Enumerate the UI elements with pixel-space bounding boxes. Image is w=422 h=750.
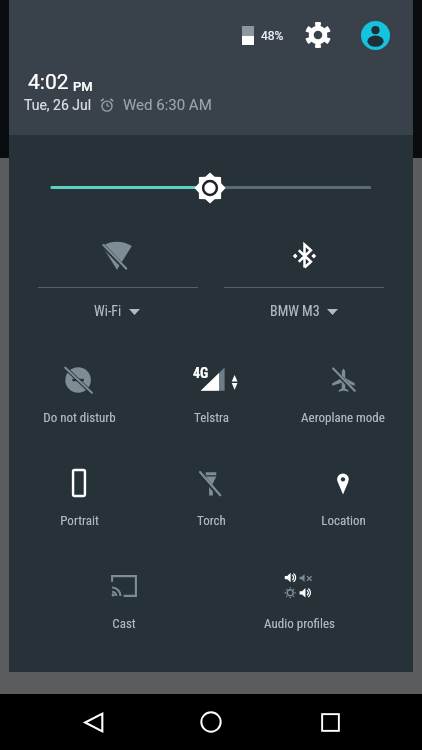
button[interactable]: Cast bbox=[94, 562, 154, 610]
button[interactable]: Audio profiles bbox=[239, 616, 359, 634]
button[interactable]: Do not disturb bbox=[19, 410, 139, 428]
button[interactable]: Audio profiles bbox=[269, 562, 329, 610]
button[interactable]: Aeroplane mode bbox=[283, 410, 403, 428]
staticText: 4G bbox=[193, 365, 209, 381]
button[interactable]: Location bbox=[313, 459, 373, 507]
staticText: Aeroplane mode bbox=[301, 410, 385, 425]
button[interactable]: User profile bbox=[355, 15, 395, 55]
button[interactable]: Brightness bbox=[190, 168, 230, 208]
button[interactable]: Cast bbox=[64, 616, 184, 634]
button[interactable]: Wi-Fi bbox=[93, 232, 141, 280]
button[interactable]: Aeroplane mode bbox=[313, 356, 373, 404]
staticText: 4:02 bbox=[28, 70, 69, 95]
staticText: Cast bbox=[112, 616, 136, 631]
button[interactable]: Torch bbox=[151, 513, 271, 531]
button[interactable]: Home bbox=[185, 696, 237, 748]
staticText: Portrait bbox=[60, 513, 99, 528]
staticText: Do not disturb bbox=[43, 410, 116, 425]
staticText: PM bbox=[73, 79, 93, 94]
button[interactable]: Telstra bbox=[181, 356, 241, 404]
button[interactable]: BMW M3 bbox=[280, 232, 328, 280]
staticText: Audio profiles bbox=[264, 616, 335, 631]
button[interactable]: Portrait bbox=[49, 459, 109, 507]
staticText: Torch bbox=[197, 513, 226, 528]
button[interactable]: Settings bbox=[298, 15, 338, 55]
staticText: BMW M3 bbox=[270, 303, 320, 319]
staticText: Wed 6:30 AM bbox=[123, 96, 212, 114]
staticText: Wi-Fi bbox=[94, 303, 122, 319]
button[interactable]: Portrait bbox=[19, 513, 139, 531]
button[interactable]: BMW M3 bbox=[249, 303, 359, 323]
staticText: 48% bbox=[261, 29, 284, 43]
staticText: Telstra bbox=[194, 410, 229, 425]
staticText: Location bbox=[321, 513, 366, 528]
button[interactable]: Torch bbox=[181, 459, 241, 507]
button[interactable]: Recent apps bbox=[304, 696, 356, 748]
staticText: Tue, 26 Jul bbox=[24, 97, 92, 113]
button[interactable]: Telstra bbox=[151, 410, 271, 428]
button[interactable]: Location bbox=[283, 513, 403, 531]
button[interactable]: Wi-Fi bbox=[62, 303, 172, 323]
button[interactable]: Do not disturb bbox=[49, 356, 109, 404]
button[interactable]: Back bbox=[67, 696, 119, 748]
